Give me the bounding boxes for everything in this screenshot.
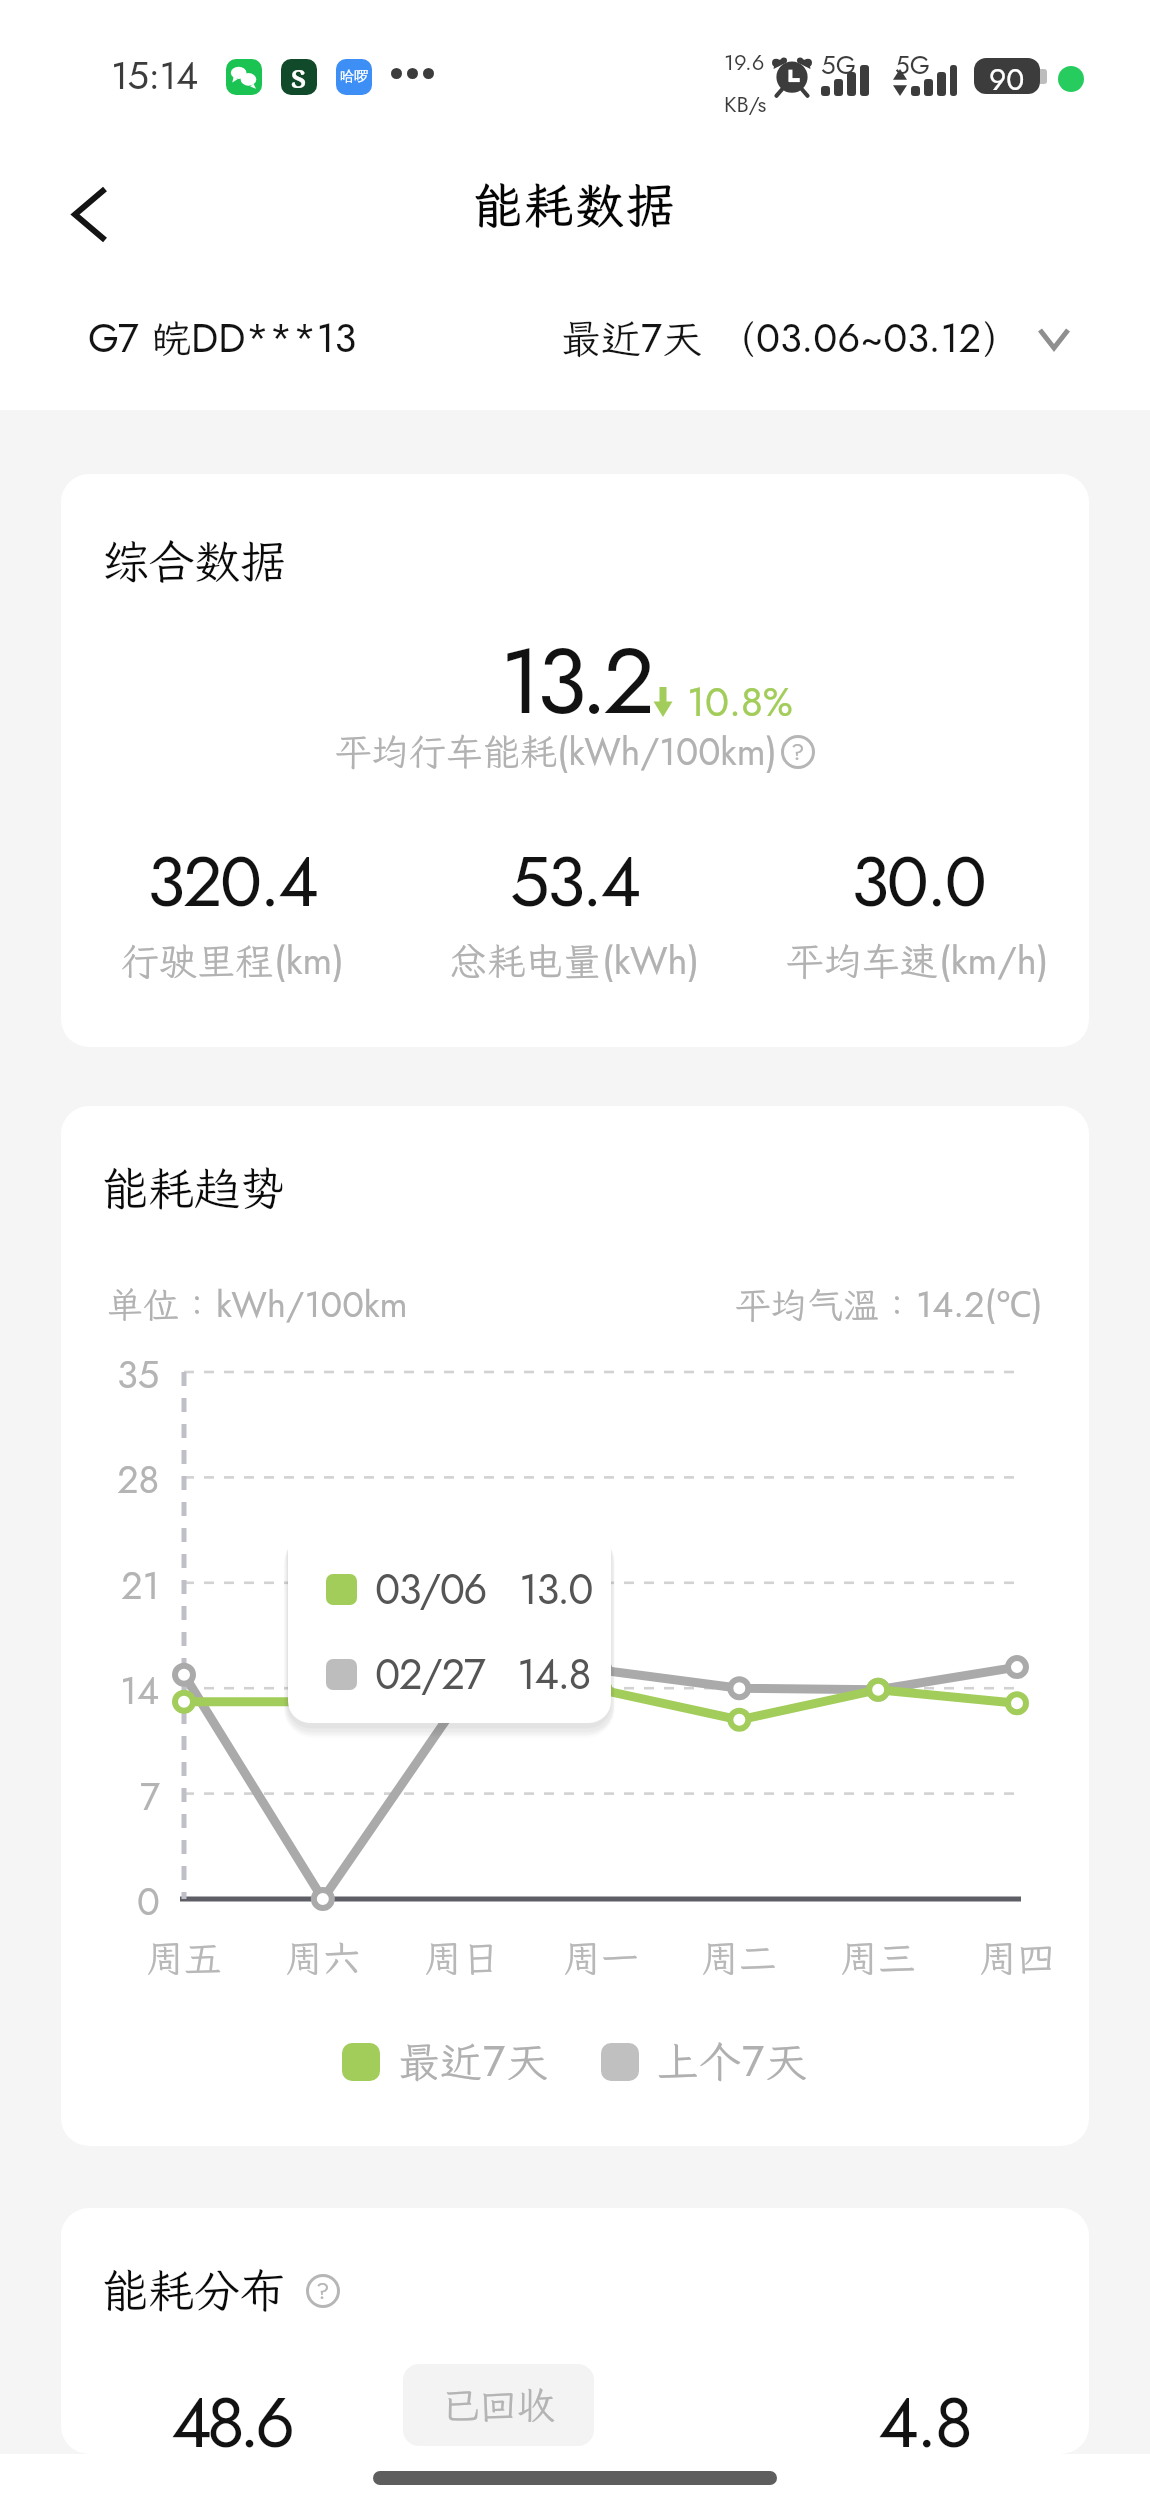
staticText: 综合数据 xyxy=(102,531,286,592)
button[interactable]: Back xyxy=(46,170,134,258)
staticText: 平均车速 xyxy=(786,936,939,986)
staticText: ? xyxy=(316,2273,330,2307)
staticText: 总耗电量 xyxy=(449,936,602,986)
staticText: DD***13 xyxy=(191,309,357,367)
staticText: （ xyxy=(716,312,756,365)
button[interactable]: More info xyxy=(781,735,815,769)
button[interactable]: More info xyxy=(306,2274,340,2308)
staticText: 能耗数据 xyxy=(473,172,678,237)
staticText: 周六 xyxy=(285,1933,362,1983)
staticText: 哈啰 xyxy=(340,68,368,86)
staticText: 天 xyxy=(765,2034,808,2089)
staticText: 10.8% xyxy=(687,673,793,731)
staticText: 周四 xyxy=(979,1933,1056,1983)
staticText: 皖 xyxy=(151,312,191,365)
staticText: 5G xyxy=(895,46,930,84)
staticText: 周二 xyxy=(701,1933,778,1983)
staticText: 14.8 xyxy=(517,1644,590,1705)
staticText: 35 xyxy=(117,1347,160,1397)
staticText: (km/h) xyxy=(939,933,1049,988)
staticText: 已回收 xyxy=(441,2380,556,2430)
staticText: (kWh) xyxy=(602,933,700,988)
staticText: 5G xyxy=(821,46,856,84)
staticText: 320.4 xyxy=(147,831,317,932)
staticText: 28 xyxy=(117,1452,160,1502)
staticText: 19.6 xyxy=(724,46,765,78)
staticText: S xyxy=(291,60,307,95)
staticText: 周一 xyxy=(563,1933,640,1983)
staticText: 7 xyxy=(483,2031,506,2092)
staticText: 周五 xyxy=(146,1933,223,1983)
staticText: 最近 xyxy=(398,2034,483,2089)
staticText: 03.06~03.12 xyxy=(756,309,982,367)
staticText: KB/s xyxy=(724,88,767,120)
staticText: ） xyxy=(982,312,1022,365)
staticText: 能耗趋势 xyxy=(102,1158,286,1219)
button[interactable]: 最近 xyxy=(561,309,1022,367)
staticText: 天 xyxy=(662,312,702,365)
staticText: (kWh/100km) xyxy=(557,725,777,778)
staticText: 14 xyxy=(120,1663,160,1713)
staticText: 周三 xyxy=(840,1933,917,1983)
staticText: 天 xyxy=(506,2034,549,2089)
staticText: 平均气温： xyxy=(735,1281,916,1328)
staticText: 上个 xyxy=(657,2034,742,2089)
button[interactable]: 已回收 xyxy=(403,2364,594,2446)
staticText: 13.2 xyxy=(500,615,651,748)
staticText: 30.0 xyxy=(851,831,985,932)
staticText: 7 xyxy=(140,1769,160,1819)
staticText: 21 xyxy=(121,1558,160,1608)
staticText: 03/06 xyxy=(375,1559,487,1620)
staticText: 7 xyxy=(641,309,662,367)
staticText: 能耗分布 xyxy=(102,2260,286,2321)
staticText: 13.0 xyxy=(519,1559,593,1620)
staticText: 最近 xyxy=(561,312,641,365)
staticText: G7 xyxy=(88,309,151,367)
staticText: 53.4 xyxy=(510,831,639,932)
staticText: 行驶里程 xyxy=(121,936,274,986)
staticText: 0 xyxy=(137,1874,160,1924)
staticText: (km) xyxy=(274,933,344,988)
staticText: 02/27 xyxy=(375,1644,485,1705)
staticText: 4.8 xyxy=(878,2372,971,2454)
staticText: 15:14 xyxy=(111,48,198,103)
staticText: 单位： xyxy=(107,1281,216,1328)
staticText: 90 xyxy=(989,58,1025,94)
staticText: ? xyxy=(791,734,805,768)
button[interactable]: Change date range xyxy=(1028,313,1080,365)
staticText: 14.2(℃) xyxy=(916,1278,1043,1330)
staticText: 周日 xyxy=(424,1933,501,1983)
staticText: 7 xyxy=(742,2031,765,2092)
staticText: 平均行车能耗 xyxy=(335,727,557,776)
staticText: kWh/100km xyxy=(216,1278,408,1330)
staticText: 48.6 xyxy=(171,2372,291,2454)
